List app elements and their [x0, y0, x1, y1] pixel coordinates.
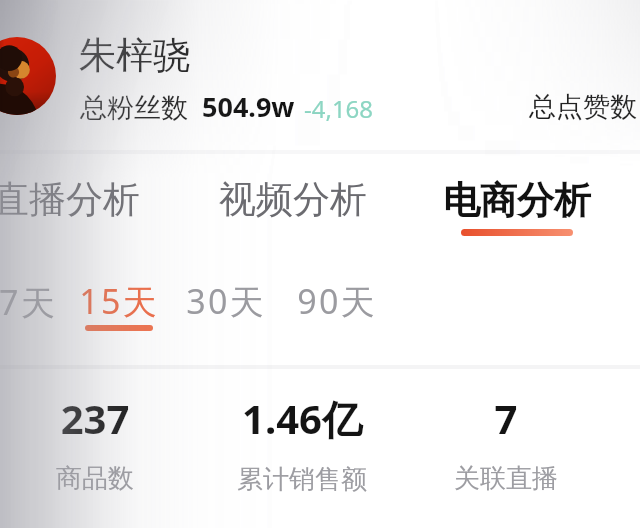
button[interactable]: 30天 — [186, 278, 266, 325]
staticText: 7天 — [0, 279, 57, 325]
button[interactable]: 电商分析 — [443, 177, 591, 236]
button[interactable]: Profile avatar — [0, 37, 56, 115]
staticText: 商品数 — [0, 462, 205, 495]
staticText: 30天 — [186, 278, 266, 324]
staticText: 总粉丝数 — [80, 91, 188, 125]
button[interactable]: 237 — [0, 391, 205, 495]
staticText: 总点赞数 — [529, 90, 637, 124]
staticText: 90天 — [297, 278, 377, 324]
button[interactable]: 15天 — [79, 278, 159, 331]
staticText: -4,168 — [304, 92, 374, 125]
staticText: 视频分析 — [219, 176, 367, 223]
button[interactable]: 视频分析 — [219, 176, 367, 223]
staticText: 累计销售额 — [192, 463, 412, 496]
staticText: 直播分析 — [0, 176, 140, 223]
staticText: 7 — [396, 391, 616, 445]
staticText: 朱梓骁 — [79, 32, 190, 79]
button[interactable]: 7 — [396, 391, 616, 495]
button[interactable]: 1.46亿 — [192, 391, 412, 496]
button[interactable]: 直播分析 — [0, 176, 140, 223]
staticText: 504.9w — [202, 88, 295, 125]
button[interactable]: 7天 — [0, 279, 57, 326]
staticText: 15天 — [79, 278, 159, 324]
staticText: 237 — [0, 391, 205, 445]
staticText: 1.46亿 — [192, 391, 412, 446]
staticText: 关联直播 — [396, 462, 616, 495]
button[interactable]: 90天 — [297, 278, 377, 325]
staticText: 电商分析 — [443, 177, 591, 224]
